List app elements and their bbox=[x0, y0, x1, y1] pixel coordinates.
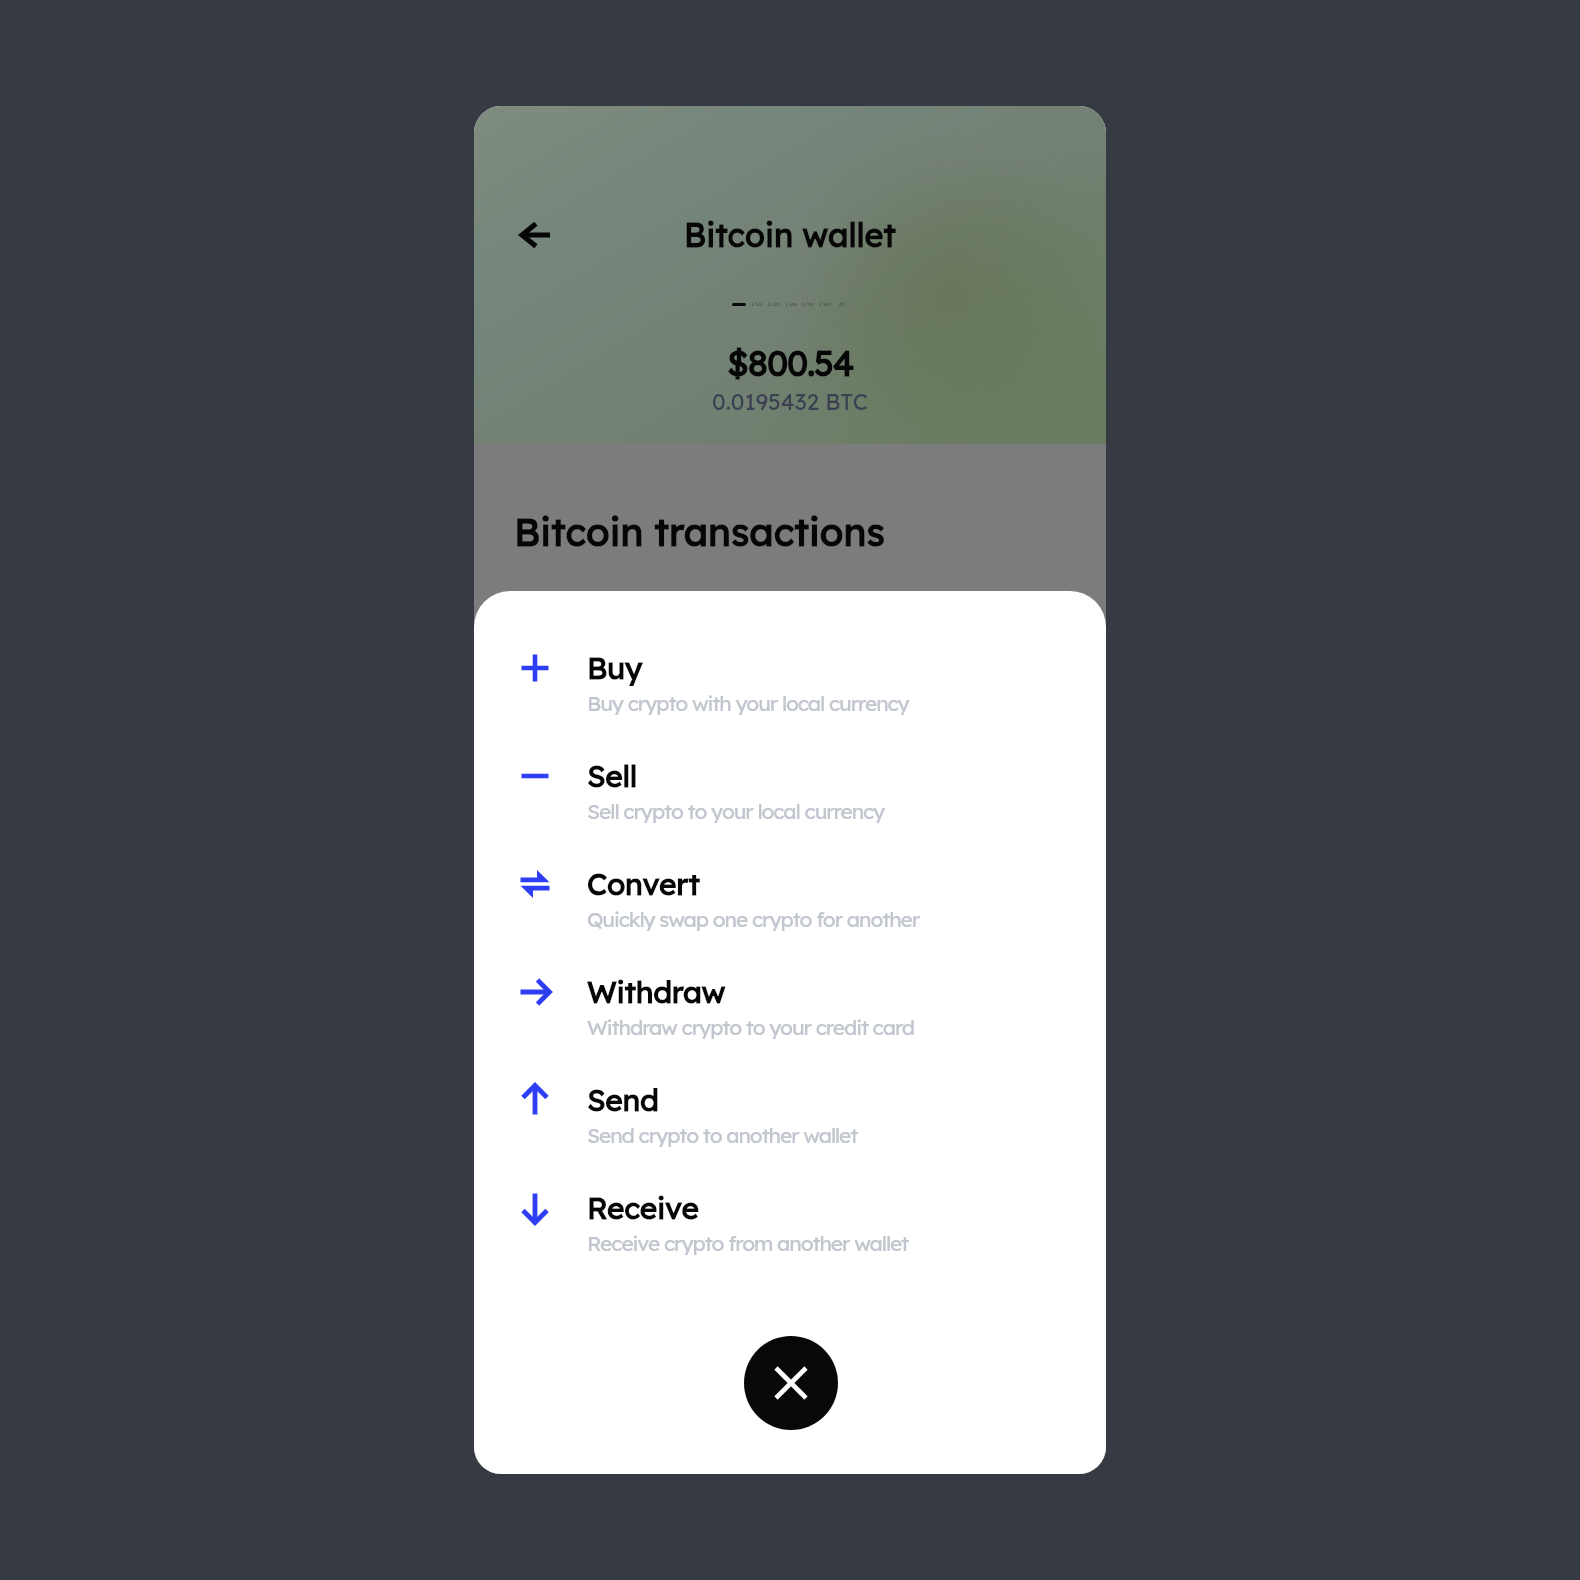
staticText: Buy bbox=[587, 649, 642, 687]
button[interactable]: 1 week bbox=[785, 301, 797, 307]
staticText: Sell crypto to your local currency bbox=[587, 798, 885, 824]
staticText: Receive bbox=[587, 1189, 699, 1227]
staticText: 1 day bbox=[768, 301, 780, 307]
staticText: Bitcoin transactions bbox=[514, 507, 885, 555]
button[interactable]: Receive bbox=[474, 1183, 1106, 1291]
staticText: 1 month bbox=[802, 301, 814, 307]
staticText: Convert bbox=[587, 865, 700, 903]
button[interactable]: 1 day bbox=[768, 301, 780, 307]
staticText: 0.0195432 BTC bbox=[712, 387, 868, 415]
button[interactable]: 1 year bbox=[819, 301, 831, 307]
button[interactable]: Send bbox=[474, 1075, 1106, 1183]
staticText: Receive crypto from another wallet bbox=[587, 1230, 909, 1256]
button[interactable]: 1 month bbox=[802, 301, 814, 307]
staticText: Send bbox=[587, 1081, 659, 1119]
button[interactable] bbox=[732, 303, 746, 306]
button[interactable]: Withdraw bbox=[474, 967, 1106, 1075]
button[interactable]: Back bbox=[512, 211, 560, 259]
button[interactable]: Sell bbox=[474, 751, 1106, 859]
staticText: Send crypto to another wallet bbox=[587, 1122, 858, 1148]
button[interactable]: Convert bbox=[474, 859, 1106, 967]
staticText: all bbox=[839, 301, 845, 307]
staticText: 1 week bbox=[785, 301, 797, 307]
staticText: Withdraw crypto to your credit card bbox=[587, 1014, 915, 1040]
staticText: Quickly swap one crypto for another bbox=[587, 906, 920, 932]
staticText: $800.54 bbox=[727, 341, 854, 385]
staticText: Buy crypto with your local currency bbox=[587, 690, 909, 716]
staticText: Sell bbox=[587, 757, 637, 795]
button[interactable]: Buy bbox=[474, 643, 1106, 751]
button[interactable]: 1 hour bbox=[751, 301, 763, 307]
staticText: 1 year bbox=[819, 301, 831, 307]
staticText: Bitcoin wallet bbox=[474, 214, 1106, 255]
staticText: 1 hour bbox=[751, 301, 763, 307]
staticText: Withdraw bbox=[587, 973, 726, 1011]
button[interactable]: all bbox=[836, 301, 848, 307]
button[interactable]: Close bbox=[744, 1336, 838, 1430]
